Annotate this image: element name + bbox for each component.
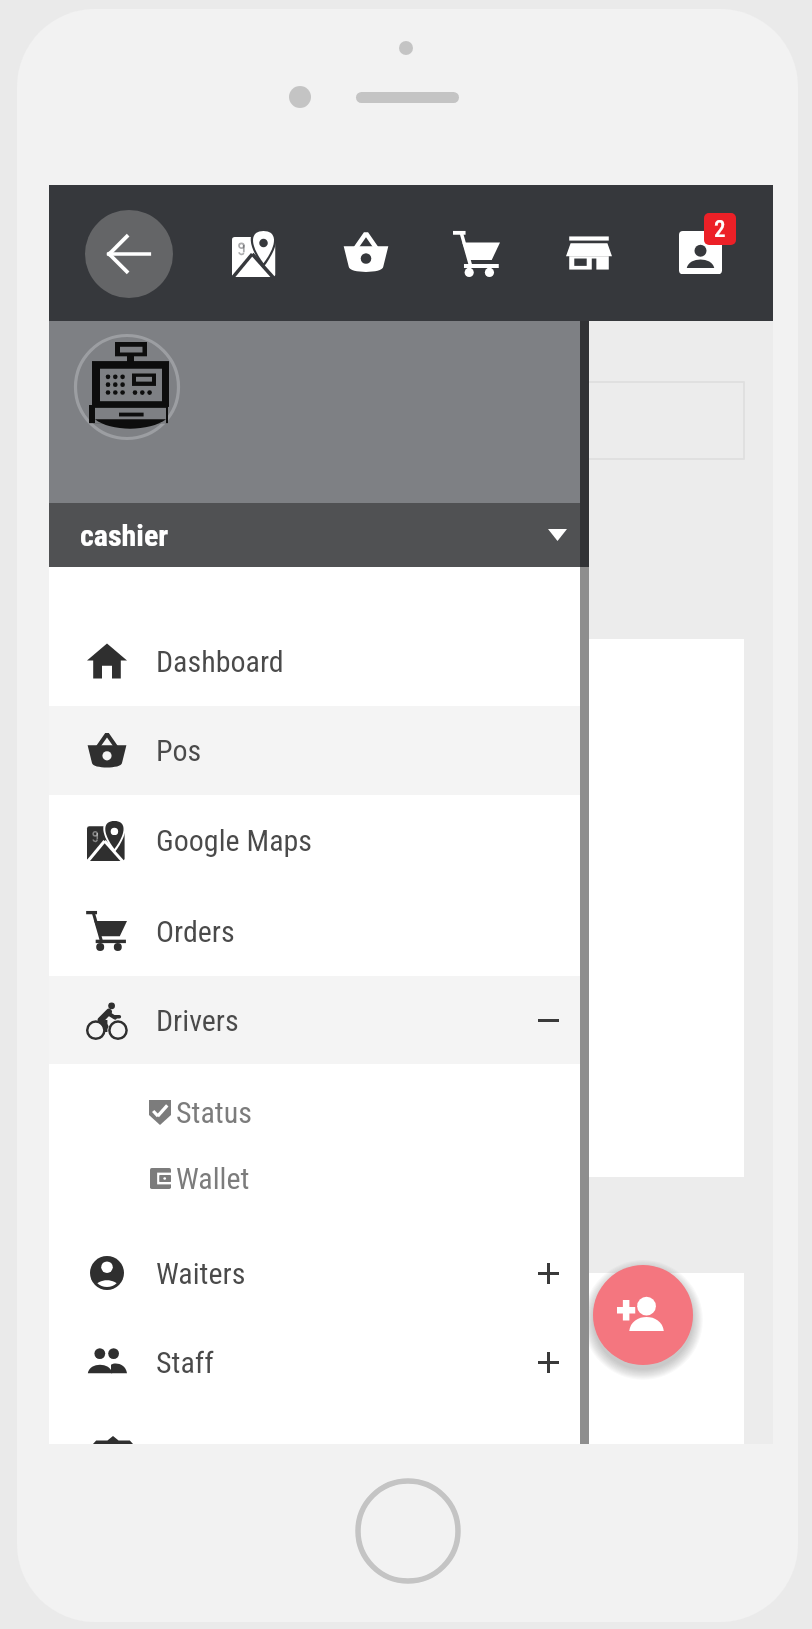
button[interactable]: Status — [49, 1079, 580, 1145]
button[interactable]: Store — [566, 230, 612, 276]
button[interactable]: Add person — [593, 1265, 693, 1365]
staticText: Drivers — [156, 1003, 239, 1038]
staticText: Pos — [156, 733, 202, 768]
button[interactable]: Contacts — [675, 209, 739, 277]
button[interactable]: cashier — [49, 503, 580, 567]
button[interactable]: Wallet — [49, 1145, 580, 1212]
button[interactable]: Pos — [49, 706, 580, 795]
button[interactable]: Orders — [49, 886, 580, 976]
button[interactable]: Google Maps — [49, 795, 580, 886]
button[interactable]: Back — [85, 210, 173, 298]
button[interactable]: Waiters — [49, 1228, 580, 1318]
button[interactable]: Staff — [49, 1318, 580, 1406]
staticText: Waiters — [156, 1256, 246, 1291]
staticText: Orders — [156, 914, 235, 949]
button[interactable]: Cart — [454, 231, 500, 277]
staticText: Wallet — [176, 1161, 250, 1196]
button[interactable]: Dashboard — [49, 616, 580, 706]
staticText: cashier — [80, 518, 169, 553]
button[interactable]: Drivers — [49, 976, 580, 1064]
staticText: Google Maps — [156, 823, 312, 858]
staticText: Staff — [156, 1345, 214, 1380]
button[interactable]: Basket — [343, 230, 389, 276]
button[interactable]: Maps — [232, 231, 278, 277]
staticText: Status — [176, 1095, 252, 1130]
staticText: 2 — [714, 216, 726, 243]
staticText: Dashboard — [156, 644, 284, 679]
